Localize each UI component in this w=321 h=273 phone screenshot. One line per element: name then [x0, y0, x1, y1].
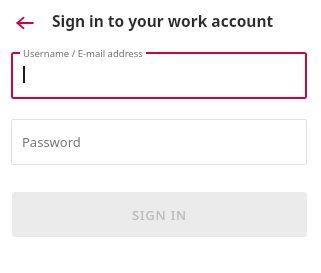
staticText: Password	[22, 133, 81, 151]
button[interactable]: SIGN IN	[12, 192, 307, 237]
staticText: Sign in to your work account	[52, 10, 274, 31]
button[interactable]	[11, 52, 307, 99]
staticText: SIGN IN	[132, 206, 187, 224]
button[interactable]: Password	[11, 119, 307, 165]
staticText: Username / E-mail address	[23, 47, 143, 58]
button[interactable]: Back	[8, 6, 42, 40]
